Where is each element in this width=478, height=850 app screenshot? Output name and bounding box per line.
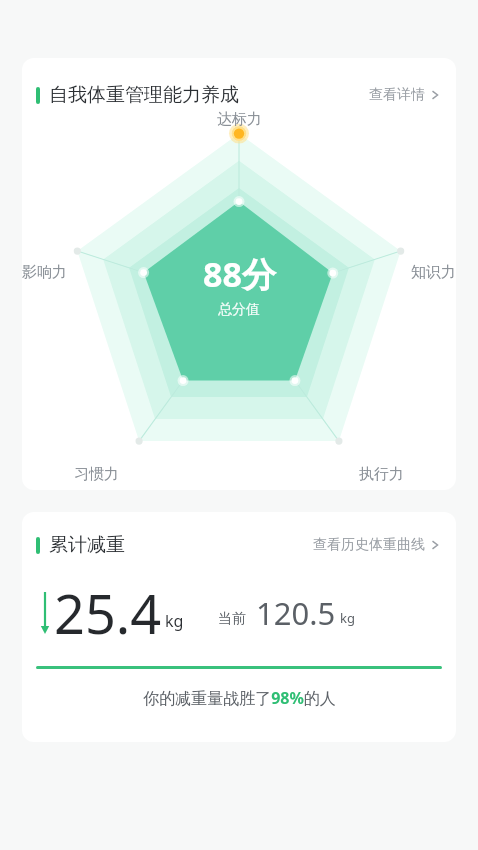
staticText: 你的减重量战胜了98%的人 bbox=[143, 687, 336, 709]
staticText: 总分值 bbox=[218, 301, 260, 319]
staticText: 25.4 bbox=[54, 576, 162, 650]
staticText: 达标力 bbox=[217, 110, 262, 129]
staticText: 知识力 bbox=[411, 263, 456, 282]
staticText: kg bbox=[165, 610, 184, 632]
staticText: 执行力 bbox=[359, 465, 404, 484]
staticText: 当前 bbox=[218, 610, 246, 628]
button[interactable]: 查看详情 bbox=[367, 82, 442, 108]
staticText: 88分 bbox=[203, 251, 276, 297]
other: Weight decreased bbox=[38, 589, 52, 637]
staticText: 自我体重管理能力养成 bbox=[49, 83, 239, 107]
staticText: kg bbox=[340, 609, 355, 627]
staticText: 累计减重 bbox=[49, 533, 125, 557]
staticText: 查看详情 bbox=[369, 86, 425, 104]
staticText: 查看历史体重曲线 bbox=[313, 536, 425, 554]
staticText: 120.5 bbox=[256, 592, 336, 634]
button[interactable]: 查看历史体重曲线 bbox=[311, 532, 442, 558]
staticText: 习惯力 bbox=[74, 465, 119, 484]
staticText: 影响力 bbox=[22, 263, 67, 282]
